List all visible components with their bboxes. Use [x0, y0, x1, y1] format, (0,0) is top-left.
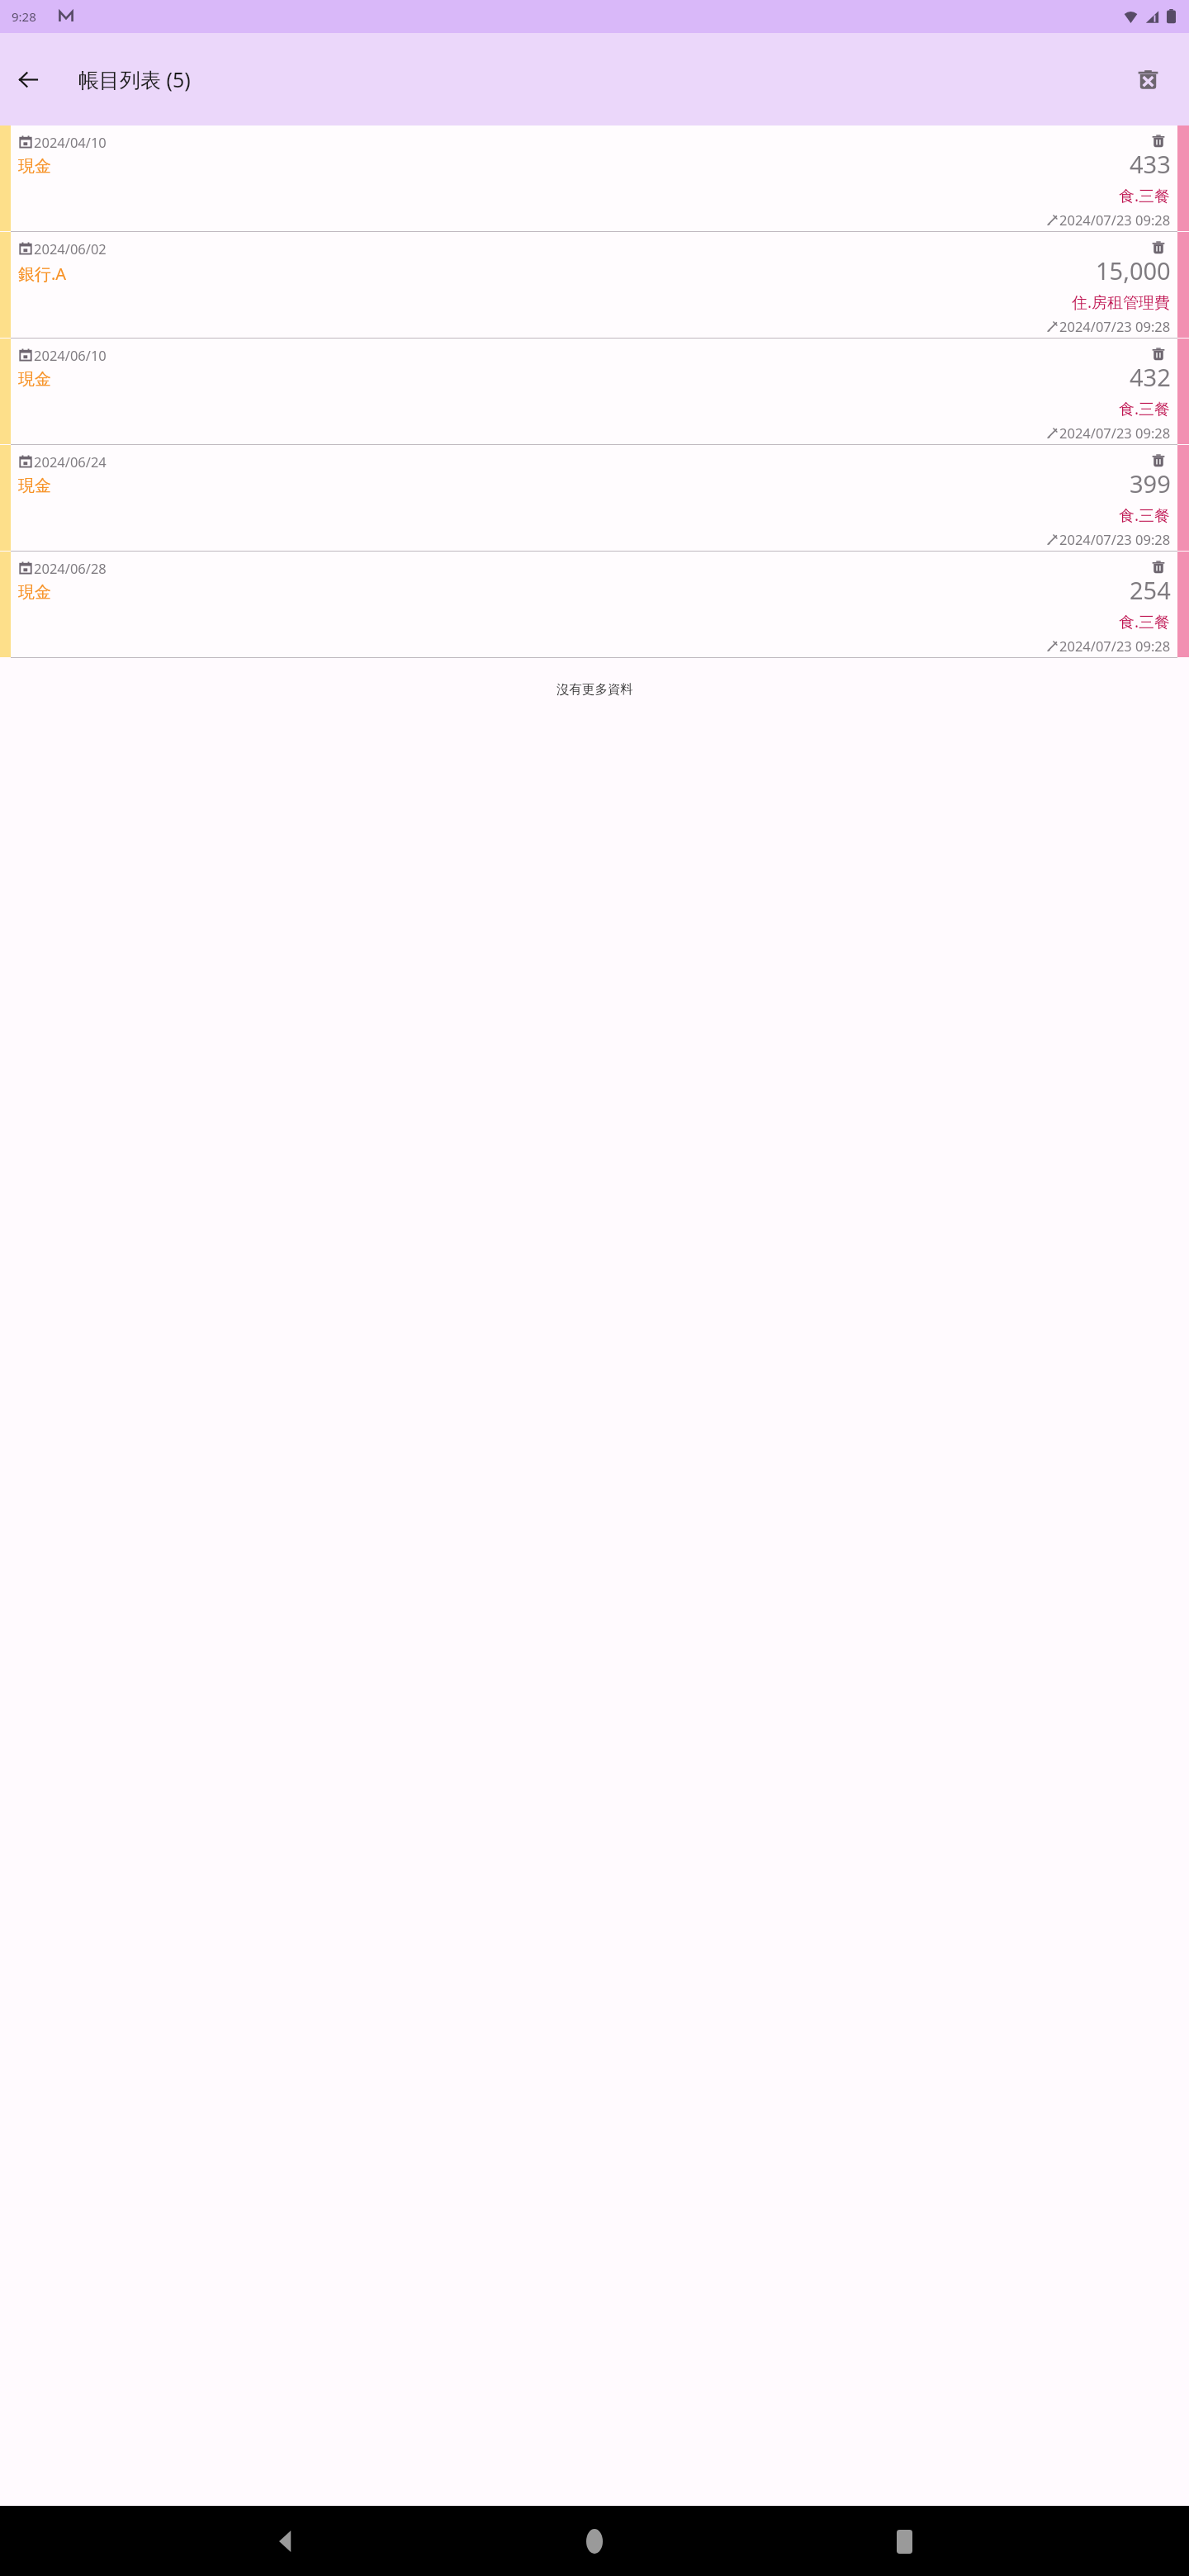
- button[interactable]: Delete entry: [1144, 447, 1172, 475]
- staticText: 15,000: [1096, 254, 1171, 286]
- staticText: 433: [1130, 148, 1171, 180]
- staticText: 254: [1130, 574, 1171, 606]
- staticText: 2024/04/10: [34, 133, 107, 151]
- staticText: 現金: [18, 369, 51, 390]
- staticText: 2024/06/24: [34, 452, 107, 471]
- button[interactable]: Delete entry: [1144, 340, 1172, 368]
- staticText: 食.三餐: [1119, 611, 1171, 632]
- button[interactable]: 2024/06/02: [0, 232, 1189, 338]
- staticText: 現金: [18, 582, 51, 603]
- button[interactable]: Delete entry: [1144, 234, 1172, 262]
- staticText: 食.三餐: [1119, 504, 1171, 526]
- staticText: 9:28: [12, 8, 36, 25]
- button[interactable]: Back: [260, 2517, 310, 2566]
- button[interactable]: 2024/04/10: [0, 125, 1189, 231]
- staticText: 2024/06/02: [34, 239, 107, 258]
- staticText: 現金: [18, 156, 51, 177]
- button[interactable]: Delete all: [1125, 56, 1171, 102]
- staticText: 2024/07/23 09:28: [1059, 424, 1171, 442]
- button[interactable]: Delete entry: [1144, 127, 1172, 155]
- button[interactable]: 2024/06/28: [0, 552, 1189, 657]
- staticText: 現金: [18, 476, 51, 496]
- staticText: 沒有更多資料: [557, 681, 633, 698]
- staticText: 2024/06/10: [34, 346, 107, 364]
- staticText: 2024/07/23 09:28: [1059, 637, 1171, 655]
- button[interactable]: 2024/06/24: [0, 445, 1189, 551]
- button[interactable]: Back: [8, 59, 48, 99]
- staticText: 帳目列表 (5): [78, 65, 191, 93]
- staticText: 2024/07/23 09:28: [1059, 211, 1171, 229]
- staticText: 食.三餐: [1119, 185, 1171, 206]
- staticText: 食.三餐: [1119, 398, 1171, 419]
- button[interactable]: Home: [570, 2517, 619, 2566]
- button[interactable]: 2024/06/10: [0, 339, 1189, 444]
- button[interactable]: Delete entry: [1144, 553, 1172, 581]
- staticText: 住.房租管理費: [1072, 291, 1171, 313]
- button[interactable]: Recents: [879, 2517, 929, 2566]
- staticText: 銀行.A: [18, 263, 67, 285]
- staticText: 2024/06/28: [34, 559, 107, 577]
- staticText: 432: [1130, 361, 1171, 393]
- staticText: 2024/07/23 09:28: [1059, 317, 1171, 335]
- staticText: 2024/07/23 09:28: [1059, 530, 1171, 548]
- staticText: 399: [1130, 467, 1171, 500]
